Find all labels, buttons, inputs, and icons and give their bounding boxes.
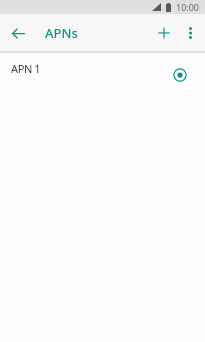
staticText: APN 1 bbox=[11, 61, 41, 76]
button[interactable]: Navigate up bbox=[0, 15, 36, 51]
button[interactable]: APN 1 bbox=[0, 54, 205, 90]
button[interactable]: Add APN bbox=[153, 15, 175, 51]
staticText: APNs bbox=[45, 24, 78, 42]
button[interactable]: More options bbox=[175, 15, 205, 51]
staticText: 10:00 bbox=[176, 1, 200, 13]
